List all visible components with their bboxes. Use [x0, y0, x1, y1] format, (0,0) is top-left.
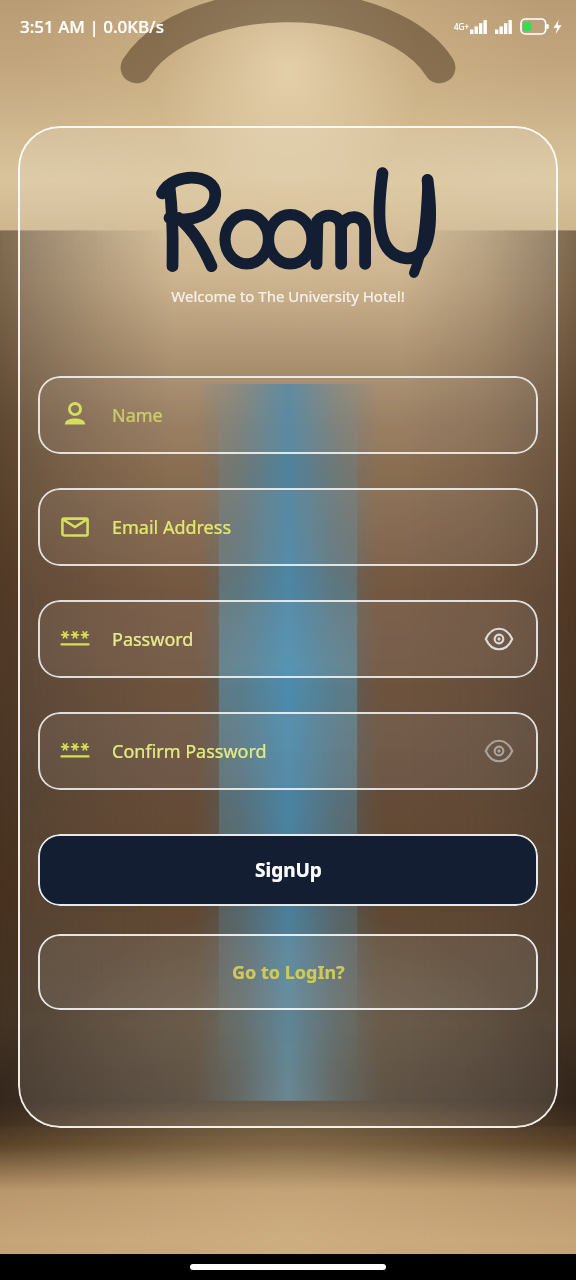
button[interactable]: Show password [482, 622, 516, 656]
staticText: 3:51 AM | 0.0KB/s [20, 15, 164, 38]
staticText: Go to LogIn? [232, 960, 345, 985]
staticText: Name [112, 403, 163, 428]
button[interactable]: Email Address [38, 488, 538, 566]
button[interactable]: SignUp [38, 834, 538, 906]
button[interactable]: Go to LogIn? [38, 934, 538, 1010]
staticText: Password [112, 627, 194, 652]
button[interactable]: Password [38, 600, 538, 678]
button[interactable]: Show password [482, 734, 516, 768]
staticText: Confirm Password [112, 739, 267, 764]
staticText: Welcome to The University Hotel! [171, 286, 405, 306]
staticText: 4G+ [454, 21, 469, 32]
button[interactable]: Name [38, 376, 538, 454]
button[interactable]: Confirm Password [38, 712, 538, 790]
staticText: Email Address [112, 515, 232, 540]
staticText: SignUp [255, 857, 322, 883]
